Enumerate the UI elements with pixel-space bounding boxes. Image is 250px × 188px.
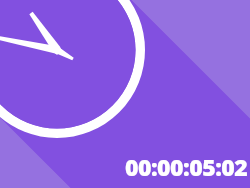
button[interactable]: Stopwatch face: [0, 0, 250, 188]
button[interactable]: 00:00:05:02: [125, 151, 248, 182]
